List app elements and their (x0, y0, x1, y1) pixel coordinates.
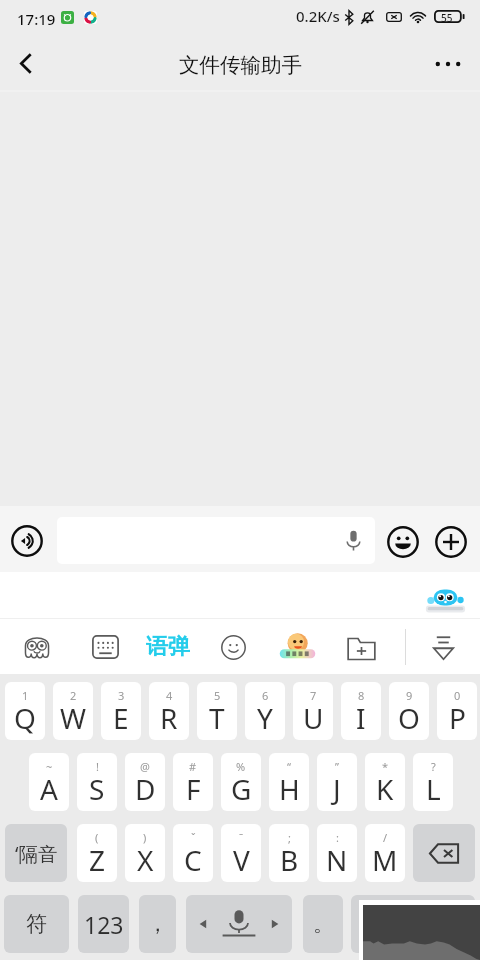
staticText: ~ (46, 759, 53, 774)
button[interactable]: Collapse keyboard (416, 620, 470, 674)
button[interactable]: ” (317, 753, 357, 811)
button[interactable] (57, 517, 375, 564)
button[interactable]: ! (77, 753, 117, 811)
staticText: X (137, 841, 154, 879)
button[interactable]: Ghost stickers (10, 620, 64, 674)
button[interactable]: # (173, 753, 213, 811)
button[interactable]: Add attachment (430, 521, 471, 562)
staticText: W (60, 699, 87, 737)
button[interactable]: Back (0, 34, 56, 90)
staticText: * (382, 759, 389, 774)
button[interactable]: 0 (437, 682, 477, 740)
button[interactable]: 4 (149, 682, 189, 740)
button[interactable]: ( (77, 824, 117, 882)
button[interactable]: % (221, 753, 261, 811)
staticText: “ (287, 759, 291, 774)
button[interactable]: 123 (78, 895, 129, 953)
staticText: : (336, 830, 339, 845)
staticText: ， (147, 911, 168, 937)
staticText: K (376, 770, 394, 808)
staticText: Z (89, 841, 106, 879)
staticText: 0.2K/s (296, 6, 340, 26)
staticText: 符 (26, 911, 47, 937)
staticText: % (236, 759, 246, 774)
button[interactable]: Voice input (8, 520, 50, 562)
staticText: 8 (358, 688, 365, 703)
button[interactable]: ) (125, 824, 165, 882)
button[interactable]: ? (413, 753, 453, 811)
staticText: J (333, 770, 341, 808)
staticText: @ (140, 759, 150, 774)
button[interactable]: * (365, 753, 405, 811)
staticText: T (209, 699, 225, 737)
staticText: 3 (118, 688, 125, 703)
staticText: I (356, 699, 366, 737)
button[interactable]: ˉ (221, 824, 261, 882)
staticText: ) (143, 830, 147, 845)
staticText: 5 (214, 688, 221, 703)
button[interactable]: : (317, 824, 357, 882)
staticText: # (189, 759, 197, 774)
button[interactable]: ; (269, 824, 309, 882)
button[interactable]: Backspace (413, 824, 475, 882)
staticText: 。 (313, 911, 334, 937)
button[interactable]: @ (125, 753, 165, 811)
staticText: ( (95, 830, 99, 845)
button[interactable]: 5 (197, 682, 237, 740)
staticText: 6 (262, 688, 269, 703)
button[interactable]: / (365, 824, 405, 882)
button[interactable]: Animated voice (270, 620, 324, 674)
staticText: Q (14, 699, 36, 737)
staticText: 17:19 (17, 9, 56, 29)
staticText: P (449, 699, 466, 737)
button[interactable]: Emoji (206, 620, 260, 674)
button[interactable]: Enter (351, 895, 475, 953)
button[interactable]: 3 (101, 682, 141, 740)
staticText: D (135, 770, 156, 808)
staticText: L (426, 770, 441, 808)
staticText: ; (288, 830, 291, 845)
staticText: N (326, 841, 348, 879)
button[interactable]: 7 (293, 682, 333, 740)
button[interactable]: ‘隔音 (5, 824, 67, 882)
staticText: 55 (441, 11, 453, 25)
staticText: / (383, 830, 388, 845)
button[interactable]: ~ (29, 753, 69, 811)
staticText: B (280, 841, 299, 879)
button[interactable]: 1 (5, 682, 45, 740)
staticText: A (40, 770, 58, 808)
button[interactable]: “ (269, 753, 309, 811)
staticText: 文件传输助手 (179, 52, 302, 78)
staticText: 123 (84, 909, 124, 940)
button[interactable]: 9 (389, 682, 429, 740)
staticText: 2 (70, 688, 77, 703)
staticText: ! (96, 759, 99, 774)
staticText: R (160, 699, 178, 737)
button[interactable]: More options (420, 36, 476, 92)
staticText: ˇ (191, 830, 196, 845)
staticText: M (372, 841, 398, 879)
staticText: U (303, 699, 324, 737)
button[interactable]: 。 (303, 895, 343, 953)
button[interactable]: Voice bullet (141, 620, 195, 674)
button[interactable]: Keyboard (78, 620, 132, 674)
staticText: 9 (406, 688, 413, 703)
button[interactable]: 6 (245, 682, 285, 740)
staticText: E (113, 699, 129, 737)
button[interactable]: 2 (53, 682, 93, 740)
staticText: 7 (310, 688, 317, 703)
button[interactable]: Space / voice input (186, 895, 292, 953)
button[interactable]: Add (334, 620, 388, 674)
staticText: ” (335, 759, 339, 774)
button[interactable]: ˇ (173, 824, 213, 882)
staticText: ˉ (239, 830, 244, 845)
button[interactable]: ， (139, 895, 176, 953)
staticText: V (233, 841, 250, 879)
button[interactable]: 符 (4, 895, 69, 953)
staticText: ? (431, 759, 436, 774)
staticText: G (231, 770, 252, 808)
staticText: 1 (22, 688, 29, 703)
staticText: S (89, 770, 105, 808)
button[interactable]: Emoji (382, 521, 423, 562)
button[interactable]: 8 (341, 682, 381, 740)
